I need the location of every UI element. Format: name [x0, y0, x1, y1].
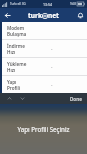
staticText: -: [51, 64, 53, 70]
staticText: net: [48, 11, 59, 20]
staticText: İndirme: [7, 43, 25, 49]
staticText: Yapı: [7, 79, 17, 85]
staticText: Yükleme: [7, 61, 27, 67]
button[interactable]: İndirme: [2, 40, 87, 58]
staticText: Hızı: [7, 49, 16, 55]
staticText: -: [51, 82, 53, 88]
staticText: 13:54: [43, 2, 52, 7]
staticText: Turkcell 3G: [10, 2, 26, 6]
staticText: turk: [28, 11, 42, 20]
button[interactable]: Previous field: [4, 93, 15, 104]
staticText: Profili: [7, 85, 21, 91]
staticText: Yapı Profili Seçiniz: [0, 125, 87, 133]
button[interactable]: Yapı: [2, 76, 87, 93]
button[interactable]: Back: [0, 8, 14, 22]
button[interactable]: Yükleme: [2, 58, 87, 76]
staticText: -: [51, 46, 53, 52]
staticText: %68: [70, 2, 76, 6]
button[interactable]: Modem: [2, 22, 87, 40]
staticText: Modem: [7, 25, 25, 31]
button[interactable]: Next field: [17, 93, 28, 104]
staticText: Hızı: [7, 67, 16, 73]
staticText: Done: [70, 96, 82, 102]
button[interactable]: Done: [69, 95, 83, 103]
button[interactable]: Notifications: [73, 8, 87, 22]
staticText: Bulaşma: [7, 31, 27, 37]
